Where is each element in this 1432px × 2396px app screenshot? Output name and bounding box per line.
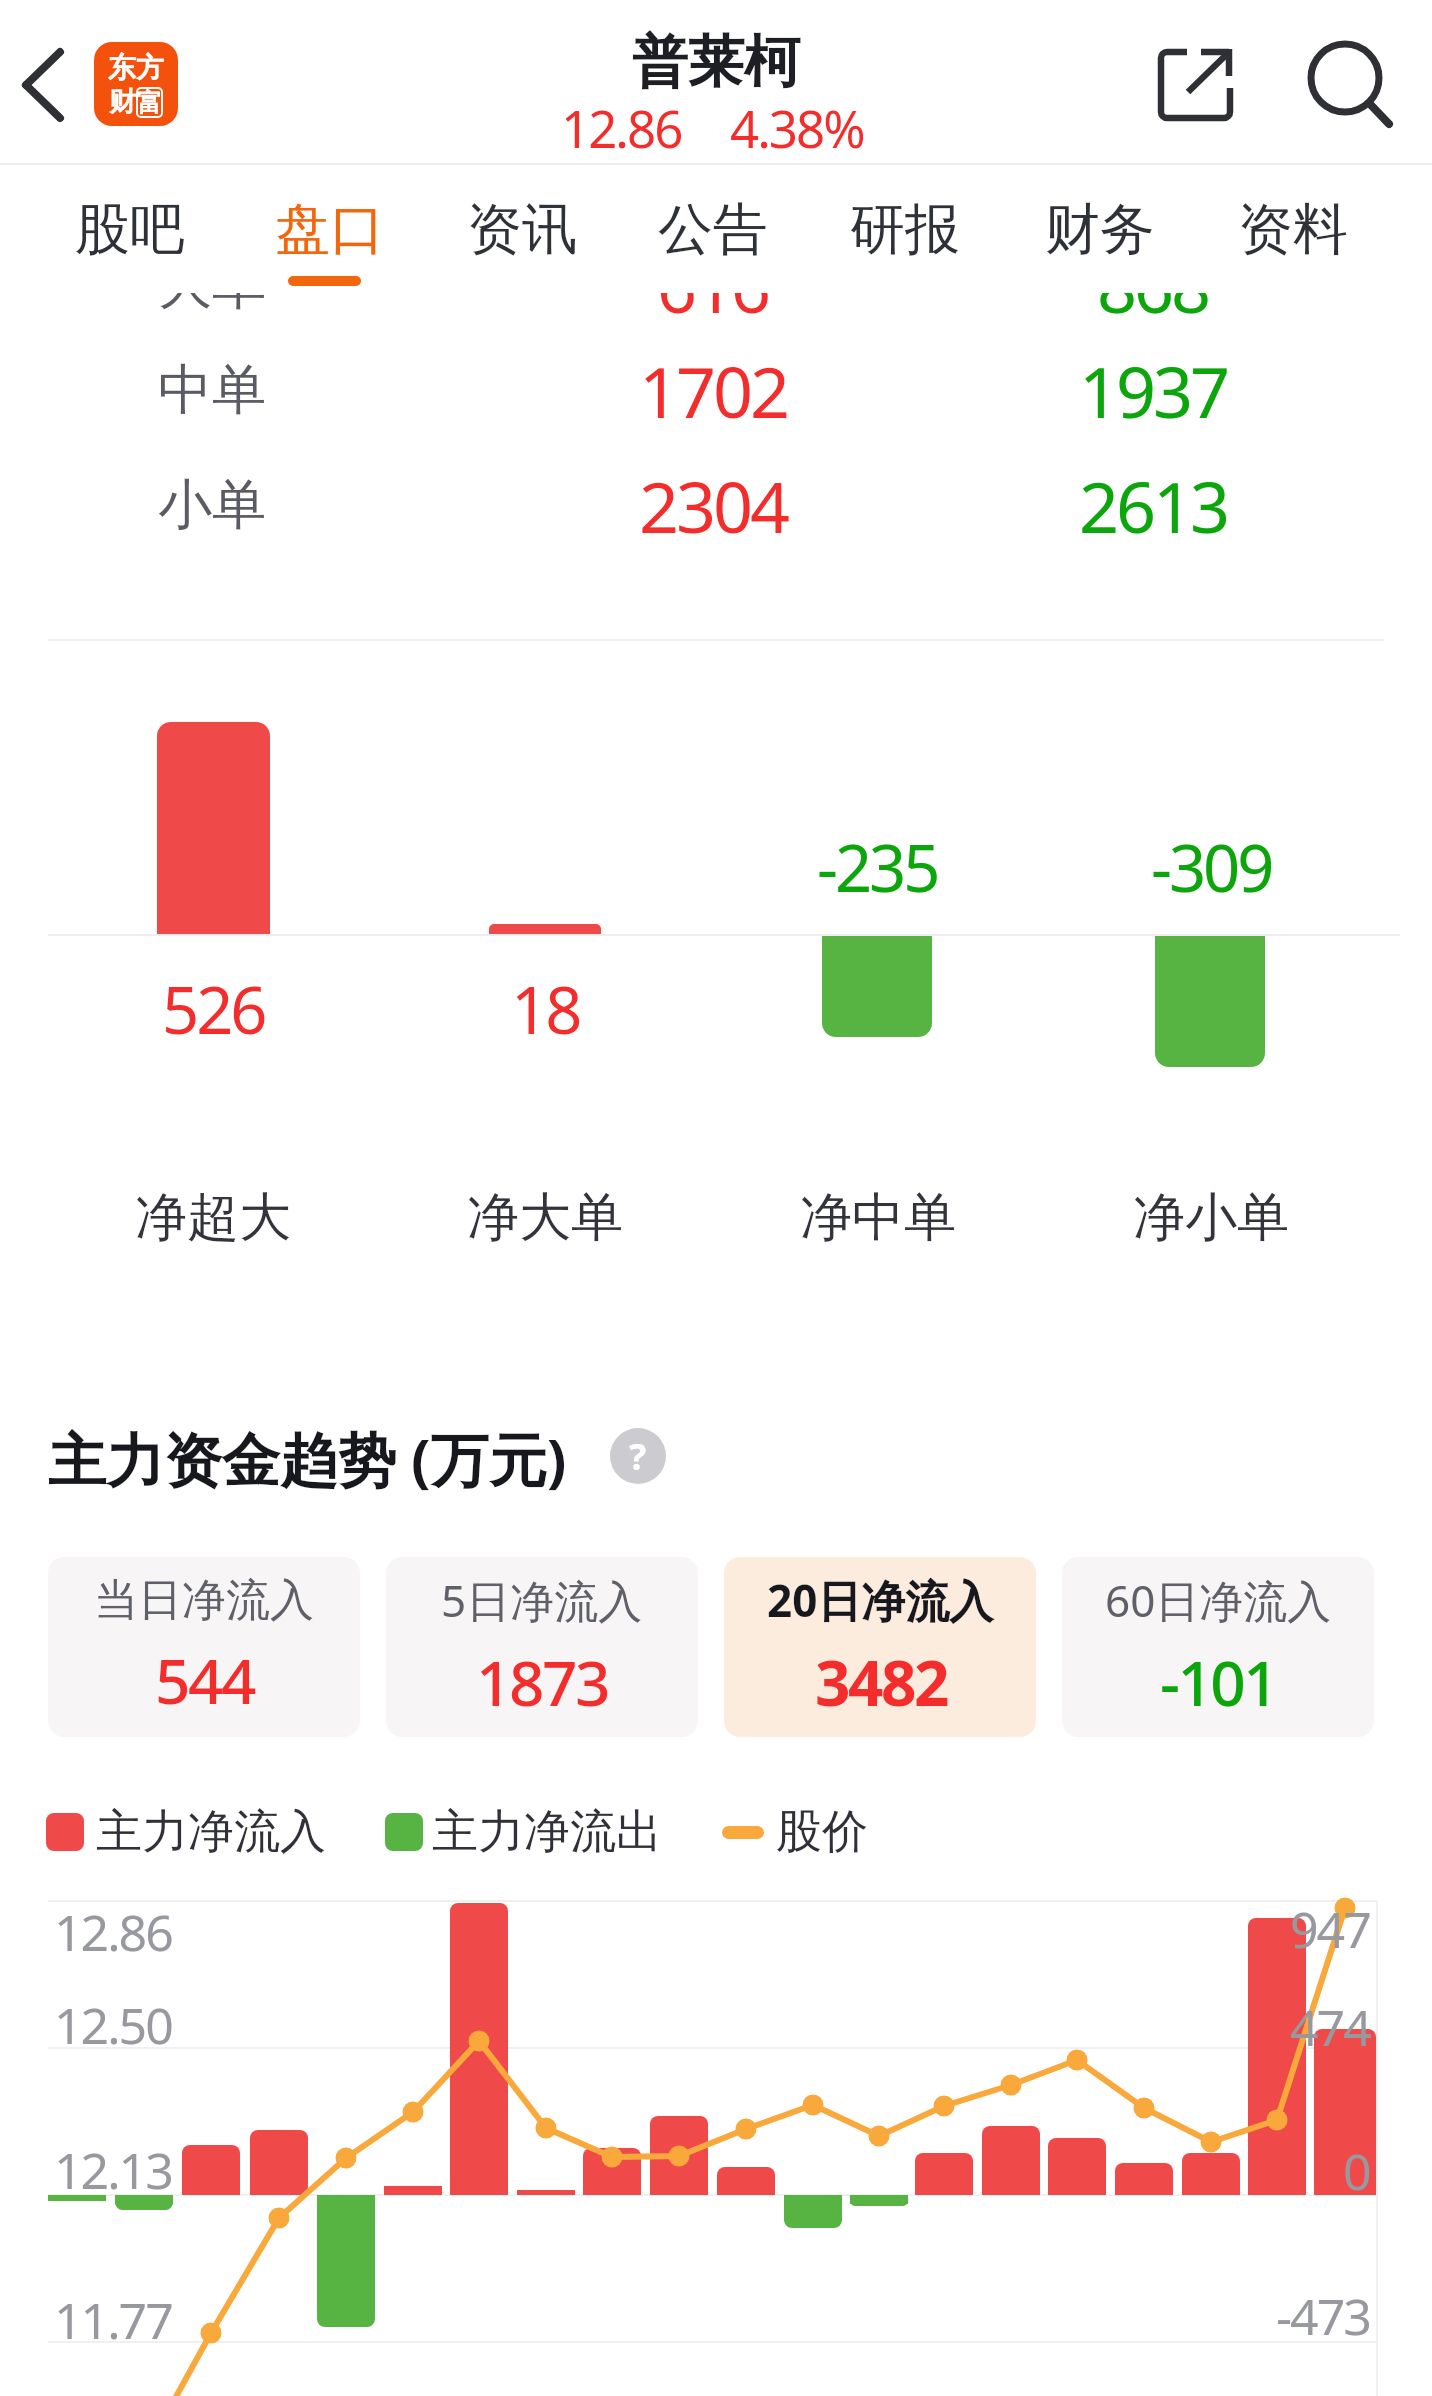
staticText: 财务 <box>1045 195 1155 264</box>
staticText: 1873 <box>476 1640 608 1724</box>
staticText: 东方 <box>108 50 164 85</box>
button[interactable]: 60日净流入 <box>1062 1557 1374 1737</box>
staticText: 财 <box>109 85 136 119</box>
button[interactable]: 研报 <box>825 166 985 292</box>
staticText: 中单 <box>158 356 266 424</box>
button[interactable]: 资讯 <box>442 166 602 292</box>
staticText: 大单 <box>158 293 266 319</box>
button[interactable]: 财务 <box>1020 166 1180 292</box>
staticText: 主力净流出 <box>432 1803 662 1861</box>
button[interactable]: ? <box>610 1428 666 1484</box>
button[interactable]: 盘口 <box>250 166 410 292</box>
staticText: 12.50 <box>54 1991 172 2059</box>
staticText: 12.86 <box>561 93 682 162</box>
staticText: 20日净流入 <box>767 1570 994 1630</box>
staticText: -101 <box>1160 1640 1277 1724</box>
staticText: 资讯 <box>467 195 577 264</box>
staticText: 股价 <box>776 1803 868 1861</box>
staticText: 主力资金趋势 (万元) <box>48 1419 567 1498</box>
staticText: 研报 <box>850 195 960 264</box>
staticText: 1702 <box>639 343 788 438</box>
staticText: 474 <box>1290 1993 1370 2061</box>
staticText: 868 <box>1097 293 1209 333</box>
staticText: 12.13 <box>54 2136 172 2204</box>
staticText: ? <box>629 1432 647 1481</box>
button[interactable]: 公告 <box>633 166 793 292</box>
staticText: 5日净流入 <box>441 1570 643 1630</box>
staticText: 净超大 <box>135 1185 291 1251</box>
button[interactable]: 资料 <box>1213 166 1373 292</box>
staticText: 947 <box>1290 1895 1370 1963</box>
staticText: 1937 <box>1079 343 1228 438</box>
staticText: -473 <box>1276 2282 1370 2350</box>
staticText: 小单 <box>158 471 266 539</box>
button[interactable] <box>1298 30 1403 135</box>
staticText: 526 <box>162 965 265 1054</box>
button[interactable]: 5日净流入 <box>386 1557 698 1737</box>
staticText: 3482 <box>815 1640 947 1724</box>
staticText: 616 <box>657 293 769 333</box>
staticText: 544 <box>155 1638 254 1722</box>
staticText: 11.77 <box>54 2286 172 2354</box>
staticText: 12.86 <box>54 1898 172 1966</box>
button[interactable] <box>1150 35 1245 130</box>
staticText: 主力净流入 <box>96 1803 326 1861</box>
staticText: 18 <box>511 965 580 1054</box>
staticText: 净大单 <box>467 1185 623 1251</box>
staticText: 富 <box>137 87 162 118</box>
staticText: 公告 <box>658 195 768 264</box>
staticText: -309 <box>1151 823 1272 912</box>
staticText: 净小单 <box>1133 1185 1289 1251</box>
button[interactable]: 当日净流入 <box>48 1557 360 1737</box>
staticText: 4.38% <box>730 93 864 162</box>
staticText: 0 <box>1343 2137 1370 2205</box>
staticText: -235 <box>817 823 938 912</box>
staticText: 盘口 <box>275 195 385 264</box>
staticText: 普莱柯 <box>632 27 800 98</box>
staticText: 股吧 <box>75 195 185 264</box>
button[interactable]: 20日净流入 <box>724 1557 1036 1737</box>
staticText: 2304 <box>639 458 788 553</box>
button[interactable] <box>10 40 80 130</box>
staticText: 当日净流入 <box>94 1573 314 1628</box>
staticText: 60日净流入 <box>1105 1570 1332 1630</box>
button[interactable]: 股吧 <box>50 166 210 292</box>
staticText: 净中单 <box>800 1185 956 1251</box>
staticText: 资料 <box>1238 195 1348 264</box>
staticText: 2613 <box>1079 458 1228 553</box>
button[interactable]: 东方 <box>94 42 178 126</box>
